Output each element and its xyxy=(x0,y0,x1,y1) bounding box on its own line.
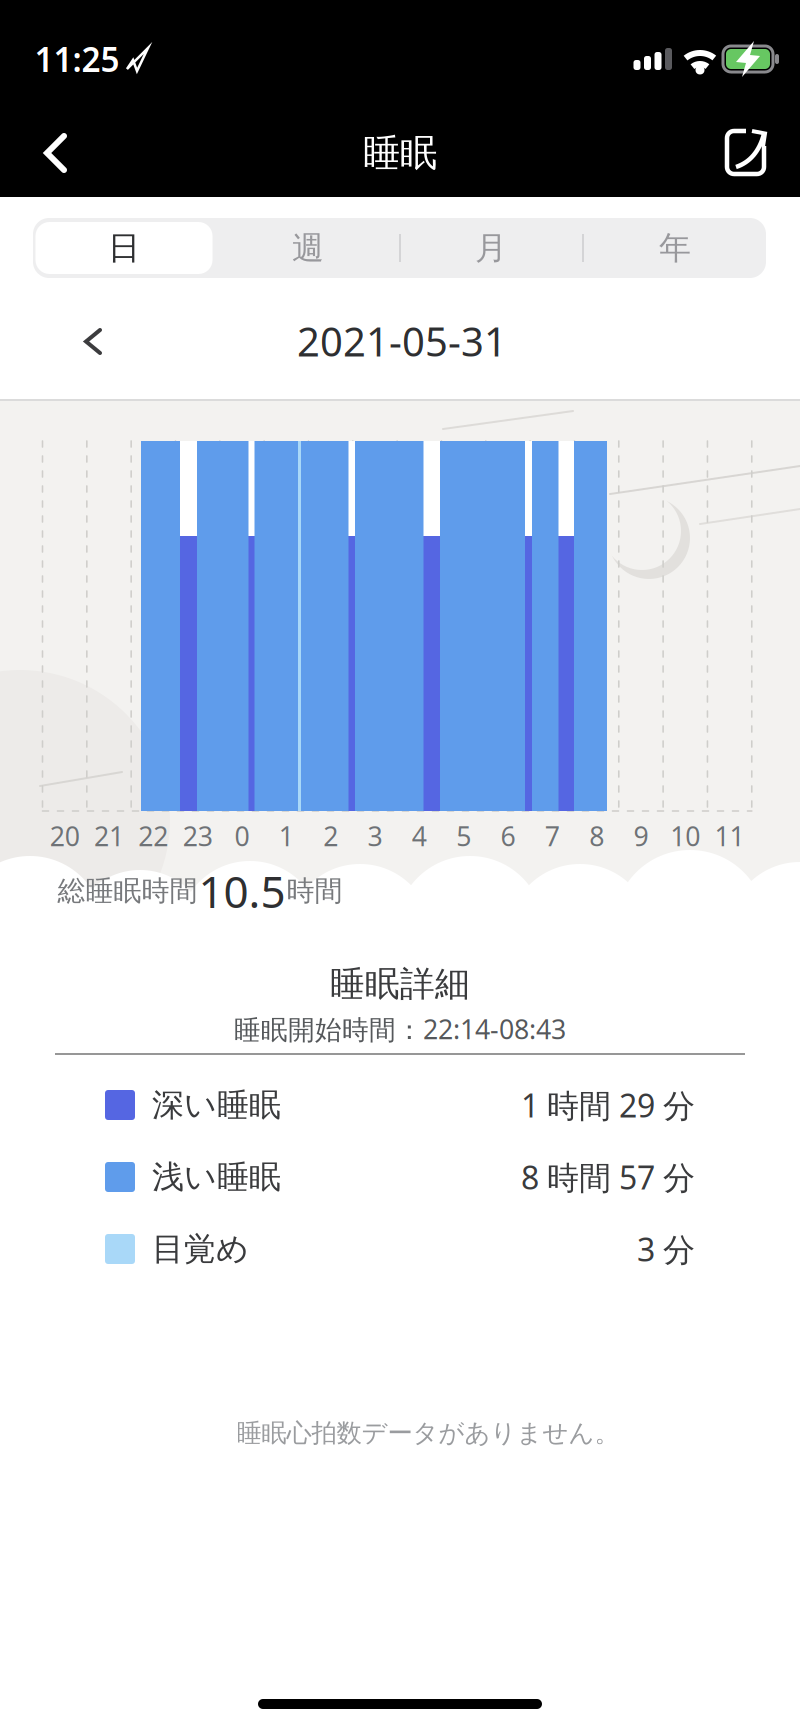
staticText: 9 xyxy=(633,818,648,854)
staticText: 週 xyxy=(292,228,324,268)
staticText: 10.5 xyxy=(198,862,285,920)
staticText: 年 xyxy=(659,228,691,268)
staticText: 1 xyxy=(279,818,294,854)
staticText: 目覚め xyxy=(152,1229,249,1269)
button[interactable] xyxy=(63,311,123,371)
staticText: 3 xyxy=(367,818,382,854)
staticText: 睡眠 xyxy=(363,130,437,176)
staticText: 5 xyxy=(456,818,471,854)
staticText: 睡眠詳細 xyxy=(330,963,470,1005)
staticText: 4 xyxy=(412,818,427,854)
staticText: 睡眠心拍数データがありません。 xyxy=(236,1417,619,1448)
staticText: 6 xyxy=(500,818,515,854)
staticText: 浅い睡眠 xyxy=(152,1157,281,1197)
staticText: 3 分 xyxy=(637,1228,695,1270)
staticText: 11 xyxy=(715,818,745,854)
button[interactable] xyxy=(714,120,778,184)
staticText: 8 時間 57 分 xyxy=(521,1156,695,1198)
staticText: 2021-05-31 xyxy=(297,314,507,367)
staticText: 0 xyxy=(234,818,249,854)
staticText: 総睡眠時間 xyxy=(57,874,197,908)
staticText: 深い睡眠 xyxy=(152,1085,281,1125)
staticText: 日 xyxy=(108,228,140,268)
staticText: 21 xyxy=(94,818,124,854)
button[interactable] xyxy=(20,118,100,188)
staticText: 8 xyxy=(589,818,604,854)
staticText: 20 xyxy=(50,818,80,854)
staticText: 睡眠開始時間：22:14-08:43 xyxy=(234,1011,566,1047)
staticText: 時間 xyxy=(286,874,342,908)
button[interactable]: 月 xyxy=(401,218,581,278)
staticText: 22 xyxy=(138,818,168,854)
staticText: 1 時間 29 分 xyxy=(521,1084,695,1126)
staticText: 2 xyxy=(323,818,338,854)
button[interactable]: 年 xyxy=(585,218,765,278)
staticText: 10 xyxy=(670,818,700,854)
staticText: 月 xyxy=(475,228,507,268)
button[interactable]: 日 xyxy=(34,218,214,278)
staticText: 11:25 xyxy=(34,37,119,81)
staticText: 23 xyxy=(183,818,213,854)
staticText: 7 xyxy=(545,818,560,854)
button[interactable]: 週 xyxy=(218,218,398,278)
